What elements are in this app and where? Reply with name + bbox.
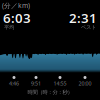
staticText: 時間（時：分：秒） (27, 89, 72, 96)
staticText: 6:03 (3, 9, 31, 27)
staticText: 4:46 (9, 80, 19, 87)
staticText: 14:55 (53, 80, 66, 87)
staticText: 平均 (4, 24, 14, 31)
staticText: 20:00 (78, 80, 91, 87)
staticText: 2:31 (69, 9, 97, 27)
staticText: 9:51 (31, 80, 41, 87)
staticText: ベスト (81, 24, 96, 31)
staticText: (分／km) (2, 1, 30, 10)
